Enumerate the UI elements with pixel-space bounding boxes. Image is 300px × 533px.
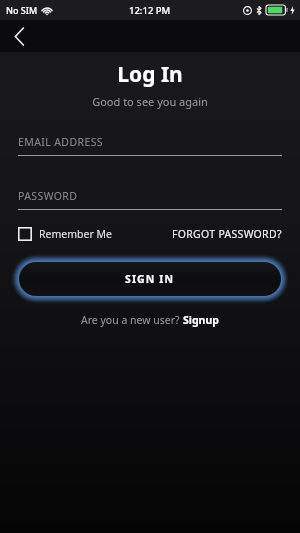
button[interactable]: PASSWORD [18, 189, 282, 210]
button[interactable]: SIGN IN [19, 262, 281, 296]
staticText: PASSWORD [18, 189, 78, 203]
button[interactable]: Back [4, 21, 34, 51]
staticText: Are you a new user? [81, 313, 183, 327]
staticText: No SIM [6, 4, 38, 16]
staticText: EMAIL ADDRESS [18, 135, 103, 149]
button[interactable]: EMAIL ADDRESS [18, 135, 282, 156]
staticText: Signup [183, 313, 219, 327]
staticText: Log In [117, 60, 183, 89]
button[interactable]: Remember Me [18, 227, 112, 241]
staticText: Good to see you again [92, 94, 208, 109]
button[interactable]: FORGOT PASSWORD? [172, 227, 282, 241]
staticText: Remember Me [39, 227, 112, 241]
staticText: FORGOT PASSWORD? [172, 227, 282, 241]
staticText: 12:12 PM [129, 4, 171, 17]
staticText: SIGN IN [125, 272, 175, 286]
button[interactable]: Signup [183, 313, 219, 327]
